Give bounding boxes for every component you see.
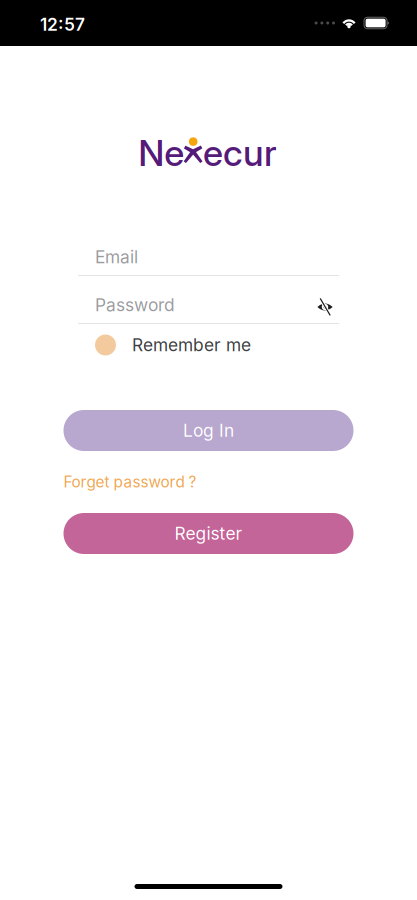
staticText: Forget password ? — [63, 473, 196, 491]
staticText: ecur — [203, 131, 277, 175]
staticText: Register — [174, 523, 242, 544]
staticText: Remember me — [132, 334, 251, 355]
button[interactable]: Forget password ? — [63, 470, 196, 494]
staticText: Ne — [138, 131, 184, 175]
button[interactable]: Log In — [63, 410, 353, 451]
staticText: Log In — [183, 420, 234, 441]
staticText: Email — [95, 246, 138, 267]
button[interactable]: Show password — [317, 296, 333, 314]
staticText: Password — [95, 294, 175, 315]
button[interactable]: Remember me — [78, 324, 339, 366]
button[interactable]: Register — [63, 513, 353, 554]
staticText: 12:57 — [40, 14, 85, 35]
